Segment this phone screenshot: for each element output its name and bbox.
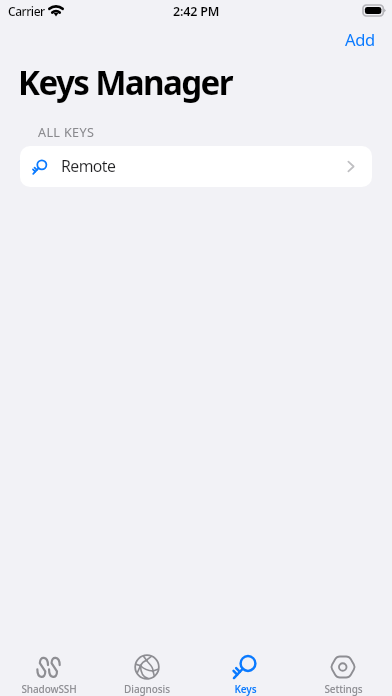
staticText: ShadowSSH — [21, 682, 77, 696]
staticText: Settings — [324, 682, 363, 696]
button[interactable]: ShadowSSH — [0, 640, 98, 696]
button[interactable]: Diagnosis — [98, 640, 196, 696]
staticText: Carrier — [8, 3, 45, 19]
button[interactable]: Settings — [294, 640, 392, 696]
staticText: Diagnosis — [124, 682, 170, 696]
staticText: Keys — [234, 682, 257, 696]
button[interactable]: Remote — [20, 146, 372, 187]
staticText: Keys Manager — [18, 60, 232, 105]
staticText: 2:42 PM — [173, 3, 220, 20]
staticText: Remote — [61, 155, 116, 177]
button[interactable]: Add — [335, 24, 385, 54]
staticText: ALL KEYS — [38, 124, 95, 141]
button[interactable]: Keys — [196, 640, 294, 696]
staticText: Add — [345, 28, 375, 50]
